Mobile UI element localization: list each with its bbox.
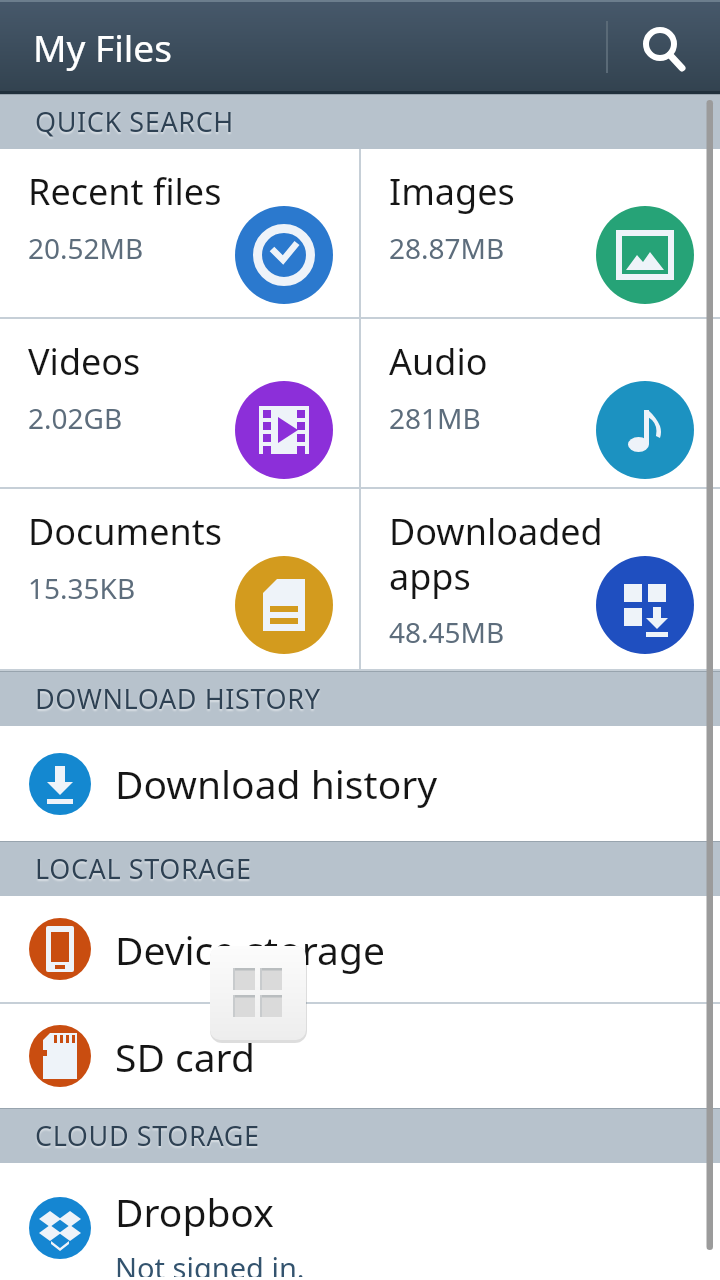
button[interactable]: Images (361, 149, 720, 317)
staticText: 20.52MB (28, 229, 144, 267)
button[interactable]: Videos (0, 319, 359, 487)
staticText: 48.45MB (389, 613, 505, 651)
button[interactable]: SD card (0, 1004, 720, 1108)
button[interactable] (622, 7, 698, 87)
staticText: LOCAL STORAGE (35, 850, 252, 887)
button[interactable]: Audio (361, 319, 720, 487)
staticText: Dropbox (115, 1185, 274, 1238)
staticText: Downloaded apps (389, 507, 625, 600)
staticText: 28.87MB (389, 229, 505, 267)
button[interactable]: Documents (0, 489, 359, 669)
staticText: Images (389, 167, 515, 216)
button[interactable]: Device storage (0, 896, 720, 1002)
button[interactable]: Downloaded apps (361, 489, 720, 669)
staticText: SD card (115, 1030, 255, 1083)
staticText: Documents (28, 507, 223, 556)
button[interactable]: Download history (0, 726, 720, 841)
button[interactable]: Recent files (0, 149, 359, 317)
staticText: Videos (28, 337, 141, 386)
staticText: Not signed in. (115, 1248, 305, 1277)
staticText: 15.35KB (28, 569, 136, 607)
staticText: Download history (115, 757, 438, 810)
staticText: DOWNLOAD HISTORY (35, 680, 321, 717)
staticText: Recent files (28, 167, 222, 216)
staticText: Device storage (115, 923, 385, 976)
staticText: Audio (389, 337, 488, 386)
staticText: QUICK SEARCH (35, 103, 234, 140)
button[interactable]: Dropbox (0, 1163, 720, 1277)
staticText: 281MB (389, 399, 481, 437)
staticText: CLOUD STORAGE (35, 1117, 260, 1154)
staticText: 2.02GB (28, 399, 123, 437)
staticText: My Files (33, 22, 172, 72)
